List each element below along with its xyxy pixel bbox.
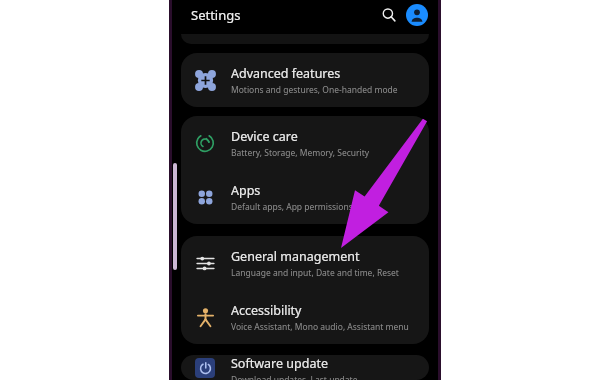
staticText: Motions and gestures, One-handed mode [231, 84, 398, 96]
button[interactable]: Device care [181, 116, 429, 170]
staticText: Language and input, Date and time, Reset [231, 267, 399, 279]
staticText: Download updates, Last update [231, 374, 358, 380]
staticText: Device care [231, 128, 298, 145]
staticText: Battery, Storage, Memory, Security [231, 147, 370, 159]
staticText: Apps [231, 182, 261, 199]
staticText: Advanced features [231, 65, 341, 82]
button[interactable]: Search [378, 4, 400, 26]
button[interactable]: Apps [181, 170, 429, 224]
button[interactable]: Advanced features [181, 53, 429, 107]
staticText: Settings [191, 6, 241, 24]
staticText: Software update [231, 355, 328, 372]
staticText: Voice Assistant, Mono audio, Assistant m… [231, 321, 409, 333]
button[interactable]: Software update [181, 355, 429, 380]
staticText: Accessibility [231, 302, 302, 319]
button[interactable]: Account [406, 4, 428, 26]
button[interactable]: Accessibility [181, 290, 429, 344]
staticText: General management [231, 248, 360, 265]
button[interactable]: General management [181, 236, 429, 290]
staticText: Default apps, App permissions [231, 201, 353, 213]
